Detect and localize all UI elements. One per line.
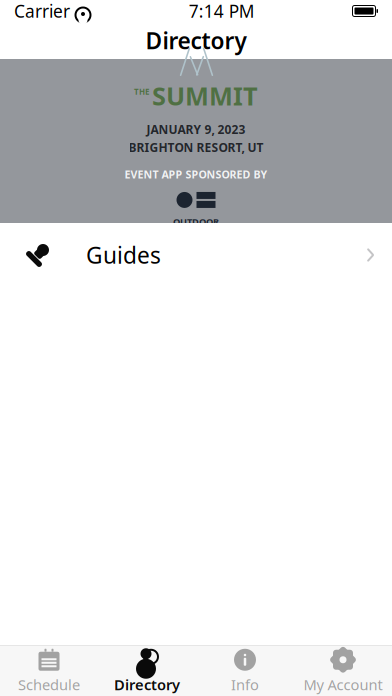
staticText: Carrier bbox=[14, 0, 70, 22]
staticText: JANUARY 9, 2023 bbox=[146, 121, 245, 137]
staticText: BRIGHTON RESORT, UT bbox=[128, 139, 263, 155]
staticText: Schedule bbox=[18, 675, 80, 694]
staticText: SUMMIT bbox=[152, 79, 258, 112]
staticText: Directory bbox=[114, 675, 180, 694]
staticText: THE bbox=[134, 86, 149, 97]
staticText: OUTDOOR bbox=[173, 215, 219, 228]
button[interactable]: Directory bbox=[98, 646, 196, 696]
staticText: Info bbox=[231, 675, 259, 694]
button[interactable]: Guides bbox=[0, 223, 392, 287]
staticText: 7:14 PM bbox=[189, 0, 255, 22]
staticText: My Account bbox=[303, 675, 382, 694]
button[interactable]: Info bbox=[196, 646, 294, 696]
button[interactable]: Schedule bbox=[0, 646, 98, 696]
staticText: Guides bbox=[86, 240, 161, 270]
button[interactable]: My Account bbox=[294, 646, 392, 696]
staticText: EVENT APP SPONSORED BY bbox=[124, 167, 267, 181]
staticText: Directory bbox=[145, 25, 246, 55]
